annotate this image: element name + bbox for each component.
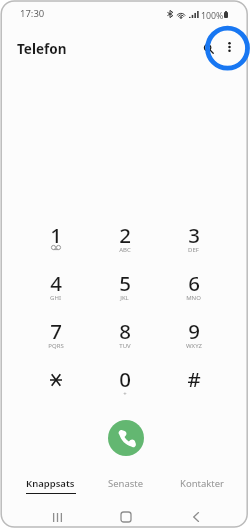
button[interactable]: 3 xyxy=(159,213,228,261)
staticText: JKL xyxy=(120,294,129,302)
staticText: Senaste xyxy=(108,477,144,490)
staticText: Knappsats xyxy=(26,477,75,490)
button[interactable]: 6 xyxy=(159,261,228,309)
button[interactable]: 0 xyxy=(90,357,159,405)
button[interactable]: 8 xyxy=(90,309,159,357)
staticText: # xyxy=(187,365,201,393)
button[interactable]: Senaste xyxy=(88,470,164,496)
staticText: 2 xyxy=(119,221,131,249)
button[interactable]: Search xyxy=(196,36,220,60)
staticText: 100% xyxy=(201,10,224,22)
staticText: 3 xyxy=(188,221,200,249)
staticText: 6 xyxy=(188,269,200,297)
button[interactable]: 1 xyxy=(21,213,90,261)
staticText: 5 xyxy=(119,269,131,297)
staticText: Telefon xyxy=(17,40,67,58)
staticText: 8 xyxy=(119,317,131,345)
button[interactable]: Call xyxy=(108,420,144,456)
button[interactable] xyxy=(21,357,90,405)
staticText: 1 xyxy=(50,221,62,249)
button[interactable]: Home xyxy=(113,505,139,527)
staticText: 17:30 xyxy=(20,7,45,20)
button[interactable]: 9 xyxy=(159,309,228,357)
staticText: MNO xyxy=(186,294,201,302)
button[interactable]: 2 xyxy=(90,213,159,261)
staticText: PQRS xyxy=(48,342,64,350)
staticText: ABC xyxy=(119,246,131,254)
button[interactable]: 7 xyxy=(21,309,90,357)
staticText: WXYZ xyxy=(186,342,202,350)
button[interactable]: Back xyxy=(183,505,209,527)
staticText: DEF xyxy=(188,246,199,254)
staticText: TUV xyxy=(119,342,131,350)
button[interactable]: 5 xyxy=(90,261,159,309)
button[interactable]: More options xyxy=(218,35,241,58)
button[interactable]: Recent apps xyxy=(44,505,70,527)
button[interactable]: 4 xyxy=(21,261,90,309)
staticText: + xyxy=(123,390,127,398)
staticText: GHI xyxy=(50,294,61,302)
button[interactable]: Kontakter xyxy=(164,470,240,496)
staticText: 9 xyxy=(188,317,200,345)
staticText: Kontakter xyxy=(180,477,225,490)
button[interactable]: Knappsats xyxy=(13,470,88,496)
staticText: 7 xyxy=(50,317,62,345)
button[interactable]: # xyxy=(159,357,228,405)
staticText: 0 xyxy=(119,365,131,393)
staticText: 4 xyxy=(50,269,62,297)
